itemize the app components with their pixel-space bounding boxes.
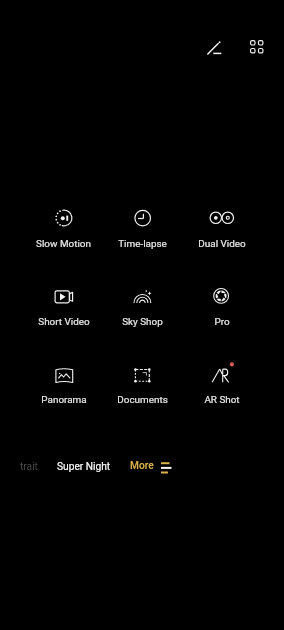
staticText: AR Shot — [204, 394, 240, 406]
staticText: Pro — [214, 316, 230, 328]
button[interactable]: trait — [20, 461, 38, 473]
button[interactable]: Dual Video — [182, 206, 261, 254]
button[interactable]: Panorama — [24, 362, 103, 410]
staticText: Time-lapse — [118, 238, 167, 250]
button[interactable]: Super Night — [57, 461, 111, 473]
button[interactable]: Camera modes — [241, 31, 273, 63]
staticText: Sky Shop — [122, 316, 163, 328]
staticText: Slow Motion — [36, 238, 91, 250]
staticText: Short Video — [38, 316, 90, 328]
button[interactable]: AR Shot — [182, 362, 261, 410]
button[interactable]: More — [130, 459, 172, 473]
button[interactable]: Sky Shop — [103, 284, 182, 332]
button[interactable]: Short Video — [24, 284, 103, 332]
staticText: Dual Video — [198, 238, 246, 250]
staticText: More — [130, 460, 154, 472]
staticText: Panorama — [41, 394, 87, 406]
staticText: Documents — [117, 394, 168, 406]
staticText: trait — [20, 461, 38, 473]
staticText: Super Night — [57, 461, 111, 473]
button[interactable]: Pro — [182, 284, 261, 332]
button[interactable]: AI scene enhance — [198, 31, 230, 63]
button[interactable]: Slow Motion — [24, 206, 103, 254]
button[interactable]: Documents — [103, 362, 182, 410]
button[interactable]: Time-lapse — [103, 206, 182, 254]
